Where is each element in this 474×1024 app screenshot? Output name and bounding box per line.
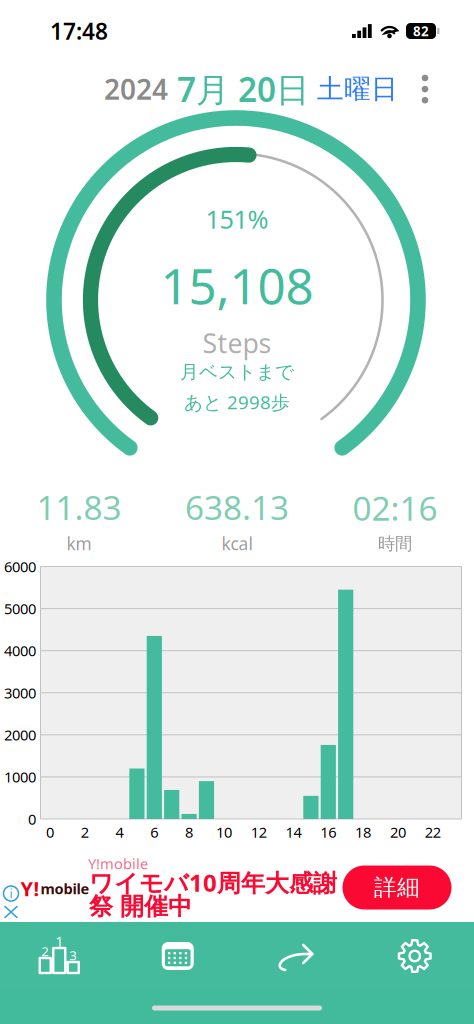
staticText: 17:48 xyxy=(50,16,108,46)
staticText: mobile xyxy=(40,879,89,898)
button[interactable]: 詳細 xyxy=(342,865,451,909)
staticText: 6000 xyxy=(4,557,36,576)
staticText: 4 xyxy=(115,822,123,842)
staticText: 151% xyxy=(205,202,268,236)
staticText: 15,108 xyxy=(160,252,313,318)
staticText: kcal xyxy=(221,532,252,555)
button[interactable]: Ranking xyxy=(0,922,118,990)
staticText: km xyxy=(66,532,91,555)
staticText: 詳細 xyxy=(374,874,420,901)
staticText: 2 xyxy=(81,822,89,842)
staticText: 7月 20日 xyxy=(168,67,309,111)
staticText: 20 xyxy=(390,822,406,842)
button[interactable]: More options xyxy=(408,67,442,111)
staticText: 時間 xyxy=(378,533,412,554)
staticText: 10 xyxy=(216,822,232,842)
staticText: Y!mobile xyxy=(88,854,148,873)
staticText: あと 2998歩 xyxy=(184,390,290,414)
staticText: 2024 xyxy=(104,70,168,108)
staticText: 02:16 xyxy=(352,486,437,530)
staticText: Y! xyxy=(20,875,39,902)
staticText: 3 xyxy=(69,946,77,964)
staticText: 1 xyxy=(55,931,63,951)
staticText: 18 xyxy=(355,822,371,842)
staticText: 16 xyxy=(320,822,336,842)
staticText: 2 xyxy=(41,942,49,960)
button[interactable]: Share xyxy=(237,922,355,990)
staticText: 0 xyxy=(46,822,54,842)
staticText: 22 xyxy=(425,822,441,842)
staticText: 12 xyxy=(251,822,267,842)
staticText: 82 xyxy=(413,22,429,40)
staticText: 0 xyxy=(28,809,36,829)
staticText: i xyxy=(9,885,12,901)
staticText: ワイモバ10周年大感謝 xyxy=(89,867,337,898)
button[interactable]: Settings xyxy=(355,922,474,990)
staticText: 月ベストまで xyxy=(180,360,294,383)
staticText: 11.83 xyxy=(36,485,121,529)
staticText: 5000 xyxy=(4,599,36,618)
staticText: 2000 xyxy=(4,725,36,745)
staticText: 4000 xyxy=(4,641,36,660)
staticText: 祭 開催中 xyxy=(89,892,192,921)
staticText: 1000 xyxy=(4,767,36,787)
staticText: 3000 xyxy=(4,683,36,702)
staticText: Steps xyxy=(202,325,271,361)
staticText: 土曜日 xyxy=(309,73,398,105)
staticText: 8 xyxy=(185,822,193,842)
staticText: 14 xyxy=(285,822,301,842)
staticText: 6 xyxy=(150,822,158,842)
button[interactable]: Calendar xyxy=(118,922,237,990)
staticText: 638.13 xyxy=(185,485,289,529)
